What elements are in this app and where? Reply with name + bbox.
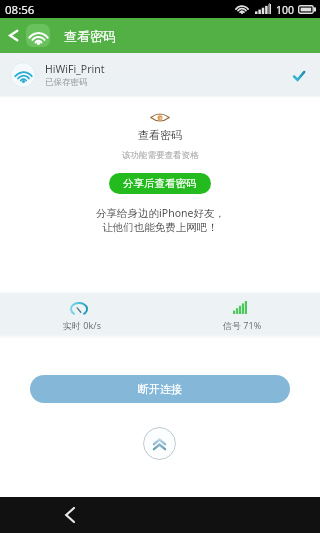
staticText: HiWiFi_Print [45, 62, 105, 76]
staticText: 分享后查看密码 [123, 177, 197, 190]
button[interactable]: 分享后查看密码 [109, 173, 211, 194]
staticText: 实时 0k/s [63, 319, 101, 331]
staticText: 分享给身边的iPhone好友， [96, 206, 225, 220]
staticText: 信号 71% [223, 319, 262, 331]
button[interactable]: Back [58, 497, 82, 533]
staticText: 查看密码 [64, 28, 116, 44]
button[interactable]: 断开连接 [30, 375, 290, 403]
staticText: 08:56 [5, 2, 35, 18]
staticText: 100 [276, 3, 295, 17]
staticText: 让他们也能免费上网吧！ [102, 221, 218, 234]
staticText: 断开连接 [138, 382, 182, 396]
other: Connected [293, 71, 305, 81]
staticText: 该功能需要查看资格 [122, 150, 199, 161]
button[interactable]: Expand [143, 427, 176, 460]
button[interactable]: HiWiFi_Print [0, 53, 320, 98]
staticText: 已保存密码 [45, 77, 88, 88]
button[interactable]: Back [3, 18, 24, 53]
staticText: 查看密码 [138, 128, 182, 142]
